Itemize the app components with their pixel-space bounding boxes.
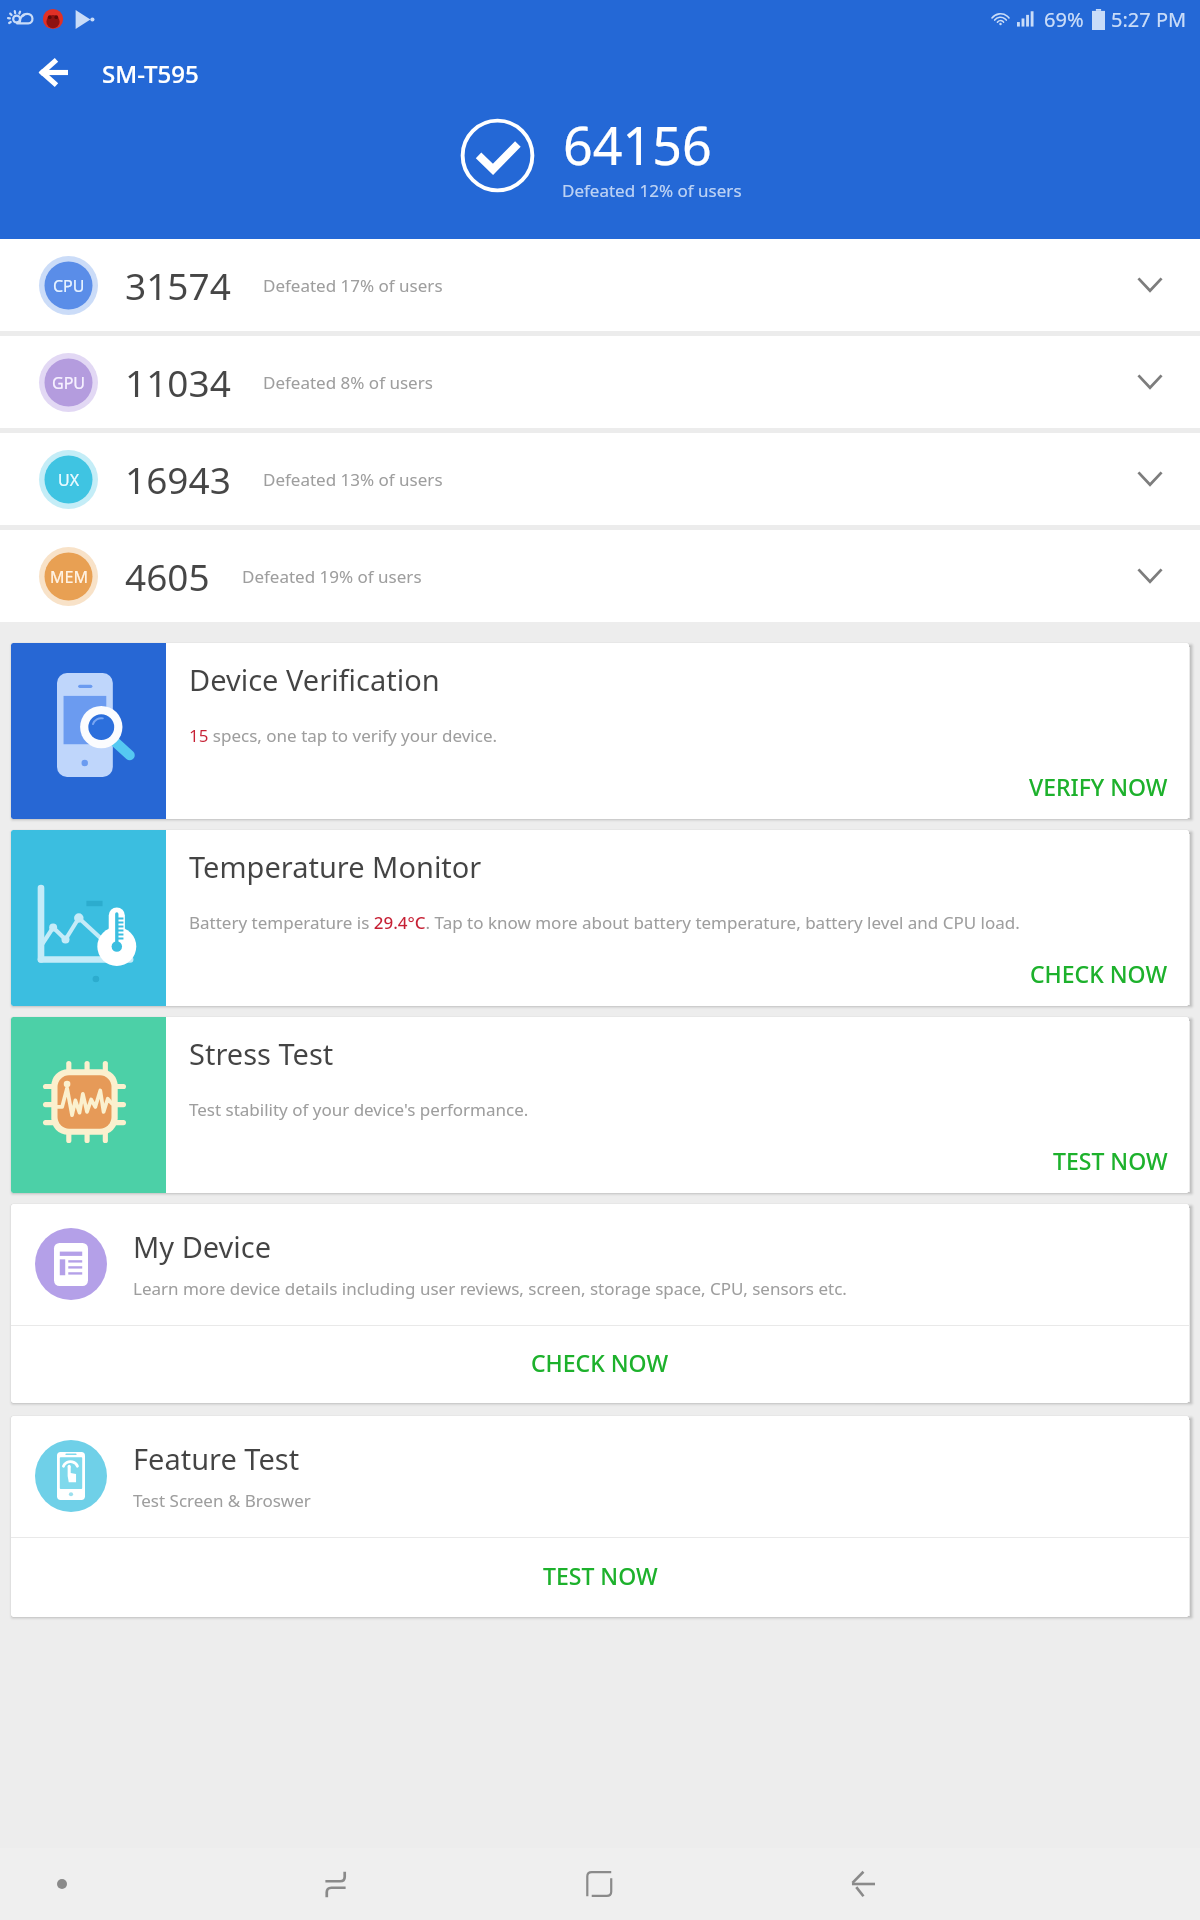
button[interactable]: Back <box>26 44 82 100</box>
button[interactable]: TEST NOW <box>11 1538 1189 1617</box>
button[interactable]: CHECK NOW <box>11 1326 1189 1403</box>
staticText: 64156 <box>563 109 712 180</box>
staticText: 31574 <box>125 260 231 310</box>
staticText: MEM <box>50 566 88 588</box>
staticText: TEST NOW <box>543 1560 658 1591</box>
staticText: UX <box>58 469 80 491</box>
button[interactable]: CHECK NOW <box>1030 958 1168 989</box>
staticText: SM-T595 <box>102 57 199 90</box>
staticText: CHECK NOW <box>1030 958 1168 989</box>
staticText: CHECK NOW <box>531 1347 669 1378</box>
staticText: Stress Test <box>189 1034 334 1073</box>
button[interactable]: Back <box>827 1848 899 1920</box>
staticText: Defeated 17% of users <box>263 274 443 297</box>
button[interactable]: Feature Test <box>11 1416 1189 1537</box>
button[interactable]: My Device <box>11 1204 1189 1325</box>
staticText: Defeated 19% of users <box>242 565 422 588</box>
staticText: Battery temperature is 29.4°C. Tap to kn… <box>189 911 1020 934</box>
button[interactable]: Home <box>563 1848 635 1920</box>
staticText: VERIFY NOW <box>1029 771 1168 802</box>
button[interactable]: Stress Test <box>11 1017 1189 1193</box>
staticText: Defeated 13% of users <box>263 468 443 491</box>
button[interactable]: TEST NOW <box>1053 1145 1168 1176</box>
button[interactable]: CPU <box>0 239 1200 331</box>
staticText: Device Verification <box>189 660 440 699</box>
staticText: My Device <box>133 1227 272 1266</box>
staticText: Defeated 8% of users <box>263 371 433 394</box>
staticText: 11034 <box>125 357 231 407</box>
button[interactable]: Recents <box>299 1848 371 1920</box>
staticText: GPU <box>52 372 86 394</box>
staticText: 16943 <box>125 454 231 504</box>
button[interactable]: Show all apps <box>26 1848 98 1920</box>
staticText: 5:27 PM <box>1111 6 1187 33</box>
staticText: Test stability of your device's performa… <box>189 1098 529 1121</box>
staticText: 15 specs, one tap to verify your device. <box>189 724 498 747</box>
staticText: 69% <box>1044 6 1084 33</box>
staticText: CPU <box>53 275 85 297</box>
staticText: 4605 <box>125 551 210 601</box>
staticText: Test Screen & Broswer <box>133 1489 311 1512</box>
button[interactable]: Temperature Monitor <box>11 830 1189 1006</box>
staticText: Feature Test <box>133 1439 300 1478</box>
staticText: TEST NOW <box>1053 1145 1168 1176</box>
staticText: Defeated 12% of users <box>562 179 742 202</box>
staticText: Temperature Monitor <box>189 847 482 886</box>
button[interactable]: UX <box>0 433 1200 525</box>
button[interactable]: VERIFY NOW <box>1029 771 1168 802</box>
staticText: Learn more device details including user… <box>133 1277 847 1300</box>
button[interactable]: GPU <box>0 336 1200 428</box>
button[interactable]: MEM <box>0 530 1200 622</box>
button[interactable]: Device Verification <box>11 643 1189 819</box>
